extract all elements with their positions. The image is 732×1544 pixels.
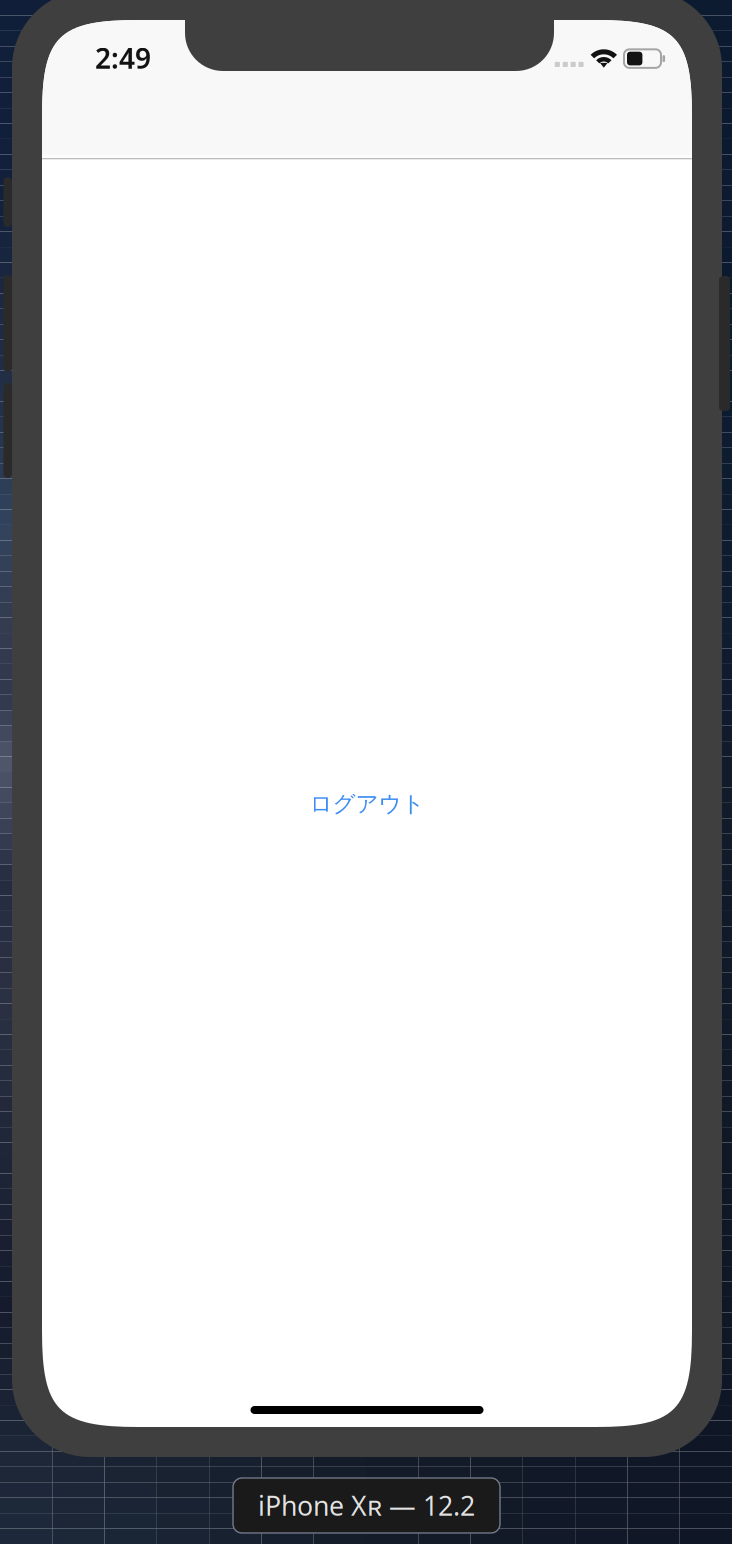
staticText: 2:49 xyxy=(95,39,151,77)
staticText: ログアウト xyxy=(309,790,424,818)
button[interactable]: ログアウト xyxy=(42,782,692,826)
staticText: iPhone Xʀ — 12.2 xyxy=(258,1488,475,1523)
